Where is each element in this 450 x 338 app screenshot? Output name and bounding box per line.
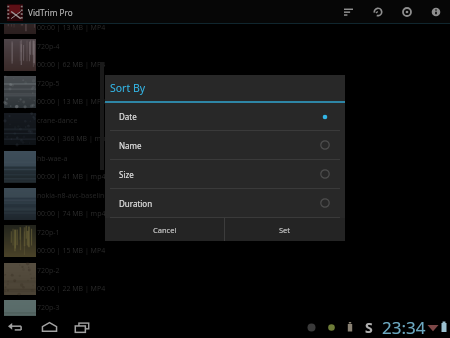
staticText: Cancel [153, 225, 177, 235]
button[interactable]: hb-wae-a [0, 149, 450, 186]
button[interactable]: crane-dance [0, 111, 450, 148]
staticText: 720p-3 [37, 303, 60, 313]
button[interactable]: 720p-5 [0, 74, 450, 111]
staticText: 720p-2 [37, 266, 60, 276]
button[interactable]: Name [105, 131, 345, 159]
staticText: 00:00 | 22 MB | MP4 [37, 284, 106, 294]
staticText: Size [119, 169, 134, 180]
staticText: 00:00 | 13 MB | MP4 [37, 24, 106, 33]
button[interactable]: 720p-1 [0, 223, 450, 260]
button[interactable]: 720p-2 [0, 261, 450, 298]
staticText: S [365, 318, 373, 337]
button[interactable]: Sort [334, 0, 363, 24]
staticText: 00:00 | 13 MB | MP4 [37, 97, 106, 107]
staticText: hb-wae-a [37, 154, 68, 164]
staticText: Date [119, 111, 137, 122]
button[interactable]: Duration [105, 189, 345, 217]
staticText: 00:00 | 62 MB | MP4 [37, 60, 106, 70]
button[interactable]: nokia-n8-avc-baseline( [0, 186, 450, 223]
staticText: 23:34 [382, 316, 426, 338]
staticText: Sort By [110, 81, 146, 95]
staticText: VidTrim Pro [28, 7, 73, 18]
staticText: crane-dance [37, 116, 78, 126]
staticText: 720p-5 [37, 79, 60, 89]
button[interactable]: Refresh [363, 0, 392, 24]
button[interactable]: Set [225, 218, 345, 241]
staticText: 00:00 | 41 MB | mp4 [37, 172, 106, 182]
button[interactable]: Cancel [105, 218, 224, 241]
staticText: Set [279, 225, 291, 235]
button[interactable]: Home [38, 316, 60, 338]
staticText: 00:00 | 74 MB | mp4 [37, 209, 106, 219]
staticText: Name [119, 140, 142, 151]
button[interactable]: Record [392, 0, 421, 24]
staticText: nokia-n8-avc-baseline( [37, 191, 111, 201]
button[interactable]: 720p-6 [0, 24, 450, 37]
button[interactable]: Recents [71, 316, 93, 338]
staticText: 00:00 | 15 MB | MP4 [37, 246, 106, 256]
staticText: 720p-4 [37, 42, 60, 52]
button[interactable]: Back [5, 316, 27, 338]
button[interactable]: Size [105, 160, 345, 188]
button[interactable]: 720p-4 [0, 37, 450, 74]
button[interactable]: Info [421, 0, 450, 24]
button[interactable]: Date [105, 103, 345, 130]
staticText: 720p-1 [37, 228, 60, 238]
staticText: Duration [119, 198, 153, 209]
button[interactable]: 720p-3 [0, 298, 450, 316]
staticText: 00:00 | 368 MB | mp4 [37, 134, 110, 144]
